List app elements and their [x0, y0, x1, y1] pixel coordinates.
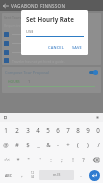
- staticText: 5: [46, 126, 50, 134]
- staticText: .: [80, 171, 82, 179]
- staticText: en-ES: [53, 173, 61, 177]
- staticText: ,: [21, 171, 23, 179]
- staticText: 12: [31, 171, 34, 175]
- button[interactable]: Back: [0, 0, 11, 11]
- button[interactable]: #: [11, 137, 22, 152]
- button[interactable]: Backspace: [89, 152, 103, 167]
- button[interactable]: ?: [78, 152, 89, 167]
- button[interactable]: 3: [22, 122, 33, 137]
- button[interactable]: 0: [93, 122, 103, 137]
- staticText: 9: [86, 126, 90, 134]
- button[interactable]: !: [67, 152, 78, 167]
- staticText: _: [37, 141, 40, 149]
- button[interactable]: ABC: [0, 167, 16, 183]
- staticText: ;: [61, 156, 63, 164]
- button[interactable]: 6: [53, 122, 63, 137]
- staticText: Compose Tour Proposal: [5, 70, 89, 75]
- staticText: SAVE: [72, 45, 82, 50]
- button[interactable]: ": [23, 152, 34, 167]
- staticText: *: [16, 156, 20, 164]
- button[interactable]: Keyboard settings: [94, 114, 101, 121]
- button[interactable]: Space: [39, 170, 74, 180]
- staticText: ): [87, 141, 89, 149]
- button[interactable]: _: [33, 137, 43, 152]
- staticText: Set Hourly Rate: [26, 15, 74, 23]
- staticText: @: [3, 141, 9, 149]
- staticText: US$: [26, 29, 34, 34]
- staticText: 1: [28, 79, 31, 84]
- button[interactable]: 9: [83, 122, 93, 137]
- staticText: CANCEL: [48, 45, 64, 50]
- staticText: 34: [31, 175, 34, 179]
- button[interactable]: @: [0, 137, 11, 152]
- button[interactable]: $: [22, 137, 33, 152]
- staticText: Sent Tours: [4, 15, 22, 20]
- button[interactable]: Clipboard: [2, 114, 9, 121]
- button[interactable]: -: [53, 137, 63, 152]
- staticText: :: [50, 156, 52, 164]
- button[interactable]: Compose Tour Proposal: [2, 67, 101, 93]
- button[interactable]: 5: [43, 122, 53, 137]
- staticText: 7: [66, 126, 70, 134]
- staticText: -: [57, 141, 59, 149]
- staticText: 8: [76, 126, 80, 134]
- button[interactable]: 1: [0, 122, 11, 137]
- staticText: #: [15, 141, 19, 149]
- button[interactable]: SAVE: [70, 44, 84, 51]
- staticText: !: [72, 156, 74, 164]
- button[interactable]: 7: [63, 122, 73, 137]
- button[interactable]: 12: [27, 167, 38, 183]
- staticText: ": [27, 156, 30, 163]
- button[interactable]: :: [45, 152, 56, 167]
- button[interactable]: CANCEL: [46, 44, 66, 51]
- staticText: Traveler has not yet hired a guide.: [12, 59, 65, 63]
- staticText: $: [26, 141, 30, 149]
- button[interactable]: ;: [56, 152, 67, 167]
- button[interactable]: ': [34, 152, 45, 167]
- staticText: ?: [82, 156, 85, 164]
- staticText: ': [39, 156, 41, 163]
- staticText: 2: [15, 126, 19, 134]
- button[interactable]: *: [13, 152, 23, 167]
- button[interactable]: Enter: [89, 170, 100, 181]
- staticText: 6: [56, 126, 60, 134]
- staticText: &: [46, 141, 51, 149]
- staticText: /: [97, 141, 100, 149]
- staticText: 1: [4, 126, 8, 134]
- button[interactable]: ,: [16, 167, 27, 183]
- button[interactable]: /: [93, 137, 103, 152]
- button[interactable]: Toggle proposal: [89, 70, 98, 75]
- staticText: +: [66, 141, 70, 149]
- button[interactable]: (: [73, 137, 83, 152]
- staticText: ABC: [5, 173, 12, 178]
- button[interactable]: 4: [33, 122, 43, 137]
- staticText: 0: [96, 126, 100, 134]
- button[interactable]: 2: [11, 122, 22, 137]
- button[interactable]: =\<: [0, 152, 13, 167]
- button[interactable]: +: [63, 137, 73, 152]
- button[interactable]: ): [83, 137, 93, 152]
- staticText: (: [77, 141, 79, 149]
- button[interactable]: &: [43, 137, 53, 152]
- staticText: VAGABOND FINNSSON: [11, 3, 66, 9]
- staticText: 4: [36, 126, 40, 134]
- staticText: HOURS: [8, 79, 20, 84]
- button[interactable]: Sent Tours: [2, 13, 101, 65]
- staticText: =\<: [4, 157, 10, 162]
- button[interactable]: 8: [73, 122, 83, 137]
- staticText: 3: [26, 126, 30, 134]
